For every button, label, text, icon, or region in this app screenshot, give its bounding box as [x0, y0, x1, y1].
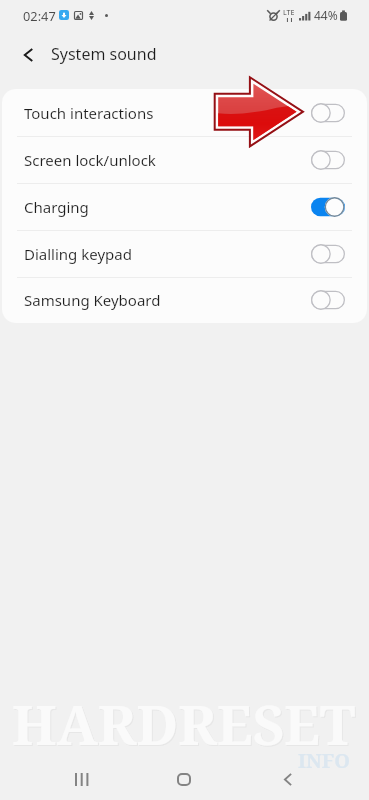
button[interactable]: Charging: [2, 183, 367, 230]
staticText: 02:47: [23, 7, 56, 24]
staticText: Charging: [24, 197, 89, 217]
staticText: HARDRESET: [12, 687, 356, 761]
staticText: INFO: [298, 747, 350, 774]
staticText: 44%: [314, 7, 338, 23]
button[interactable]: Recents: [57, 755, 105, 800]
staticText: Dialling keypad: [24, 244, 132, 264]
button[interactable]: Samsung Keyboard: [2, 277, 367, 323]
button[interactable]: Home: [160, 755, 208, 800]
button[interactable]: Screen lock/unlock: [2, 136, 367, 183]
staticText: Touch interactions: [24, 103, 154, 123]
button[interactable]: Back: [264, 755, 312, 800]
staticText: Screen lock/unlock: [24, 150, 156, 170]
staticText: LTE: [283, 8, 295, 18]
staticText: System sound: [51, 43, 157, 65]
staticText: Samsung Keyboard: [24, 290, 161, 310]
button[interactable]: Touch interactions: [2, 89, 367, 136]
button[interactable]: Back: [8, 35, 48, 75]
staticText: HARDRESET: [13, 688, 357, 762]
button[interactable]: Dialling keypad: [2, 230, 367, 277]
